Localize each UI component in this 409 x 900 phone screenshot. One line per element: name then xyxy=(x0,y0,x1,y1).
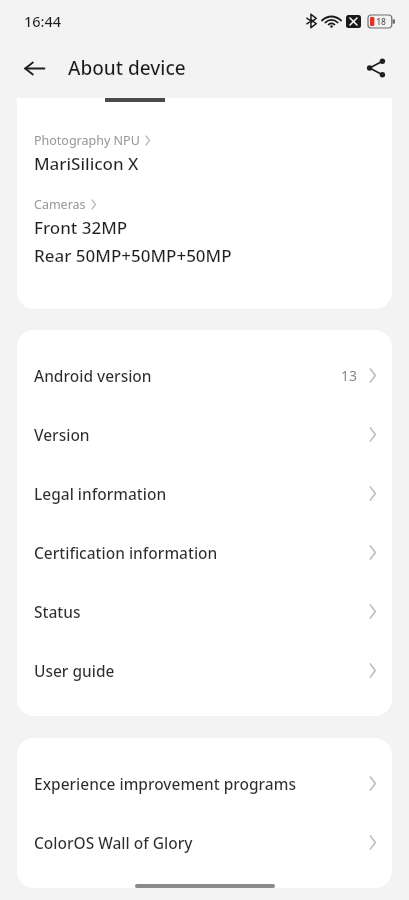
button[interactable]: Legal information xyxy=(17,464,392,523)
staticText: Certification information xyxy=(34,542,218,563)
staticText: Photography NPU xyxy=(34,132,140,149)
staticText: Cameras xyxy=(34,196,86,213)
button[interactable]: ColorOS Wall of Glory xyxy=(17,813,392,872)
staticText: 18 xyxy=(376,16,386,28)
staticText: Legal information xyxy=(34,483,167,504)
staticText: About device xyxy=(68,55,186,81)
button[interactable]: Photography NPU xyxy=(17,132,392,175)
button[interactable]: Experience improvement programs xyxy=(17,754,392,813)
button[interactable]: Cameras xyxy=(17,196,392,267)
staticText: Front 32MP xyxy=(34,216,128,239)
staticText: 13 xyxy=(341,366,358,385)
staticText: Android version xyxy=(34,365,152,386)
staticText: Status xyxy=(34,601,81,622)
staticText: Experience improvement programs xyxy=(34,773,296,794)
button[interactable]: Version xyxy=(17,405,392,464)
staticText: ColorOS Wall of Glory xyxy=(34,832,193,853)
staticText: 16:44 xyxy=(24,11,62,31)
staticText: Version xyxy=(34,424,90,445)
button[interactable]: Android version xyxy=(17,346,392,405)
button[interactable]: Certification information xyxy=(17,523,392,582)
button[interactable]: Back xyxy=(14,48,54,88)
staticText: MariSilicon X xyxy=(34,152,139,175)
staticText: Rear 50MP+50MP+50MP xyxy=(34,244,232,267)
button[interactable]: Share xyxy=(355,47,397,89)
button[interactable]: Status xyxy=(17,582,392,641)
button[interactable]: User guide xyxy=(17,641,392,700)
staticText: User guide xyxy=(34,660,115,681)
